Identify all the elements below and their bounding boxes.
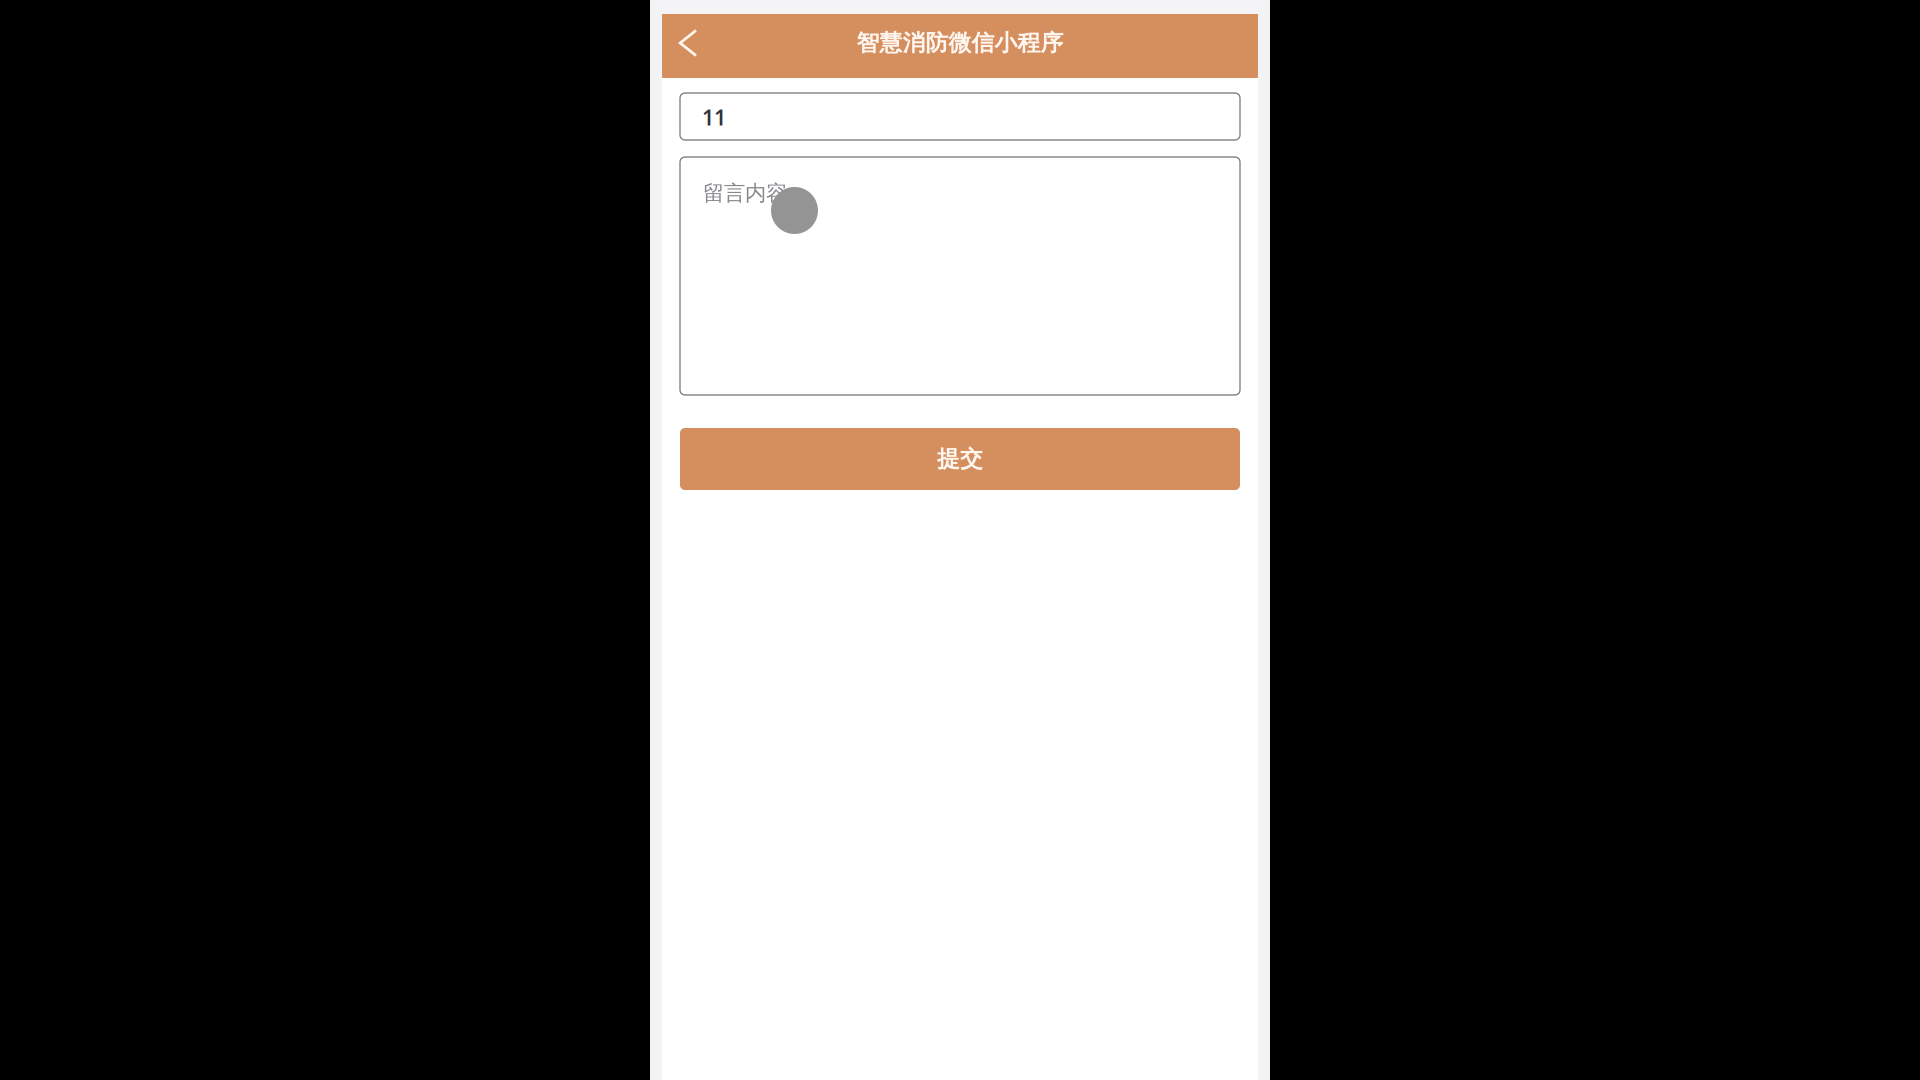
button[interactable]: Back	[662, 14, 710, 78]
staticText: 留言内容	[703, 180, 787, 206]
staticText: 提交	[937, 445, 983, 473]
button[interactable]: 提交	[680, 428, 1240, 490]
button[interactable]: 留言内容	[680, 157, 1240, 395]
staticText: 智慧消防微信小程序	[856, 29, 1063, 57]
staticText: 11	[702, 103, 726, 131]
button[interactable]: 11	[680, 93, 1240, 140]
